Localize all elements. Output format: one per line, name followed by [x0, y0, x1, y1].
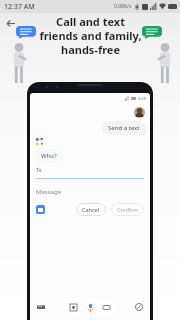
- staticText: 0.06K/s: [114, 3, 132, 10]
- staticText: Cancel: [82, 206, 100, 213]
- button[interactable]: Keyboard: [35, 301, 47, 313]
- staticText: Who?: [41, 152, 57, 160]
- staticText: 9:45: [138, 96, 146, 101]
- button[interactable]: Messaging app: [36, 205, 45, 214]
- staticText: Send a text: [108, 124, 140, 132]
- button[interactable]: Keyboard input: [102, 303, 111, 312]
- button[interactable]: Cancel: [76, 203, 106, 216]
- button[interactable]: Voice input: [85, 302, 95, 312]
- staticText: Message: [36, 188, 62, 196]
- button[interactable]: Account: [134, 107, 145, 118]
- button[interactable]: Confirm: [111, 203, 144, 216]
- staticText: Call and text friends and family, hands-…: [39, 14, 142, 57]
- button[interactable]: Lens: [69, 303, 78, 312]
- staticText: To: [36, 167, 42, 174]
- button[interactable]: Send a text: [102, 121, 146, 135]
- button[interactable]: Explore: [133, 301, 145, 313]
- button[interactable]: Back: [2, 15, 18, 31]
- staticText: Confirm: [117, 206, 138, 213]
- staticText: 12:37 AM: [4, 2, 35, 12]
- button[interactable]: Who?: [35, 149, 63, 163]
